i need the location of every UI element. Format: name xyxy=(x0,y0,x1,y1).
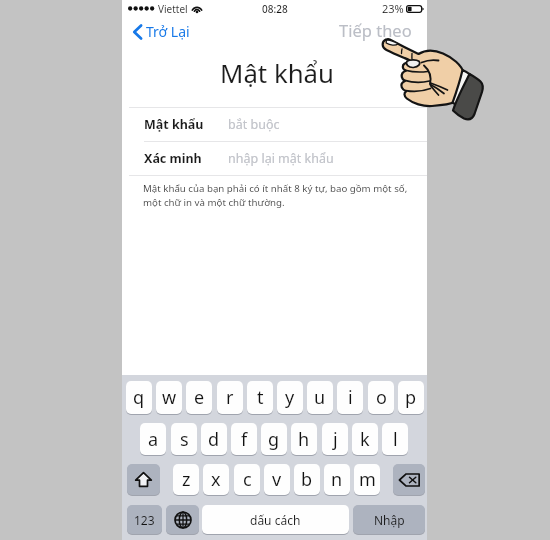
staticText: n xyxy=(331,467,343,492)
staticText: j xyxy=(333,427,338,452)
button[interactable]: s xyxy=(171,423,197,455)
staticText: k xyxy=(360,427,370,452)
staticText: r xyxy=(226,385,234,410)
staticText: w xyxy=(162,385,177,410)
staticText: dấu cách xyxy=(250,512,301,528)
button[interactable]: w xyxy=(156,381,182,414)
button[interactable]: Nhập xyxy=(353,505,425,534)
staticText: z xyxy=(182,467,191,492)
button[interactable]: q xyxy=(126,381,152,414)
staticText: p xyxy=(405,385,417,410)
staticText: y xyxy=(285,385,295,410)
staticText: Viettel xyxy=(158,2,188,16)
button[interactable]: 123 xyxy=(127,505,162,534)
button[interactable]: Tiếp theo xyxy=(329,15,427,45)
button[interactable]: o xyxy=(368,381,394,414)
button[interactable]: a xyxy=(140,423,166,455)
button[interactable]: x xyxy=(203,464,229,495)
button[interactable]: Change keyboard xyxy=(166,505,199,534)
staticText: m xyxy=(359,467,376,492)
staticText: i xyxy=(348,385,353,410)
button[interactable]: Mật khẩu xyxy=(122,108,427,141)
staticText: bắt buộc xyxy=(228,116,280,133)
button[interactable]: y xyxy=(277,381,303,414)
staticText: Xác minh xyxy=(144,150,202,167)
staticText: Mật khẩu của bạn phải có ít nhất 8 ký tự… xyxy=(143,182,415,209)
staticText: v xyxy=(272,467,282,492)
button[interactable]: Xác minh xyxy=(122,142,427,175)
button[interactable]: m xyxy=(354,464,380,495)
button[interactable]: d xyxy=(201,423,227,455)
button[interactable]: j xyxy=(322,423,348,455)
button[interactable]: h xyxy=(291,423,317,455)
staticText: x xyxy=(211,467,221,492)
button[interactable]: t xyxy=(247,381,273,414)
staticText: h xyxy=(298,427,310,452)
staticText: 23% xyxy=(382,1,404,16)
staticText: g xyxy=(268,427,280,452)
button[interactable]: Trở Lại xyxy=(122,18,200,45)
button[interactable]: p xyxy=(398,381,424,414)
button[interactable]: l xyxy=(382,423,408,455)
staticText: 123 xyxy=(134,512,155,528)
staticText: Nhập xyxy=(374,512,405,528)
button[interactable]: e xyxy=(186,381,212,414)
staticText: a xyxy=(148,427,159,452)
staticText: l xyxy=(393,427,398,452)
staticText: Trở Lại xyxy=(146,22,190,41)
button[interactable]: n xyxy=(324,464,350,495)
staticText: 08:28 xyxy=(262,2,288,16)
staticText: c xyxy=(243,467,252,492)
staticText: Mật khẩu xyxy=(220,55,335,90)
button[interactable]: b xyxy=(294,464,320,495)
button[interactable]: r xyxy=(217,381,243,414)
staticText: u xyxy=(314,385,326,410)
staticText: e xyxy=(194,385,205,410)
button[interactable]: u xyxy=(307,381,333,414)
staticText: t xyxy=(257,385,264,410)
button[interactable]: z xyxy=(173,464,199,495)
button[interactable]: Shift xyxy=(127,464,160,495)
button[interactable]: c xyxy=(234,464,260,495)
button[interactable]: v xyxy=(264,464,290,495)
button[interactable]: k xyxy=(352,423,378,455)
staticText: d xyxy=(208,427,220,452)
button[interactable]: g xyxy=(261,423,287,455)
button[interactable]: f xyxy=(231,423,257,455)
staticText: f xyxy=(241,427,248,452)
button[interactable]: Backspace xyxy=(393,464,425,495)
staticText: q xyxy=(133,385,145,410)
staticText: Tiếp theo xyxy=(339,19,412,41)
staticText: s xyxy=(180,427,189,452)
button[interactable]: dấu cách xyxy=(202,505,349,534)
staticText: o xyxy=(376,385,387,410)
button[interactable]: i xyxy=(337,381,363,414)
staticText: nhập lại mật khẩu xyxy=(228,150,334,167)
staticText: Mật khẩu xyxy=(144,116,204,133)
staticText: b xyxy=(301,467,313,492)
